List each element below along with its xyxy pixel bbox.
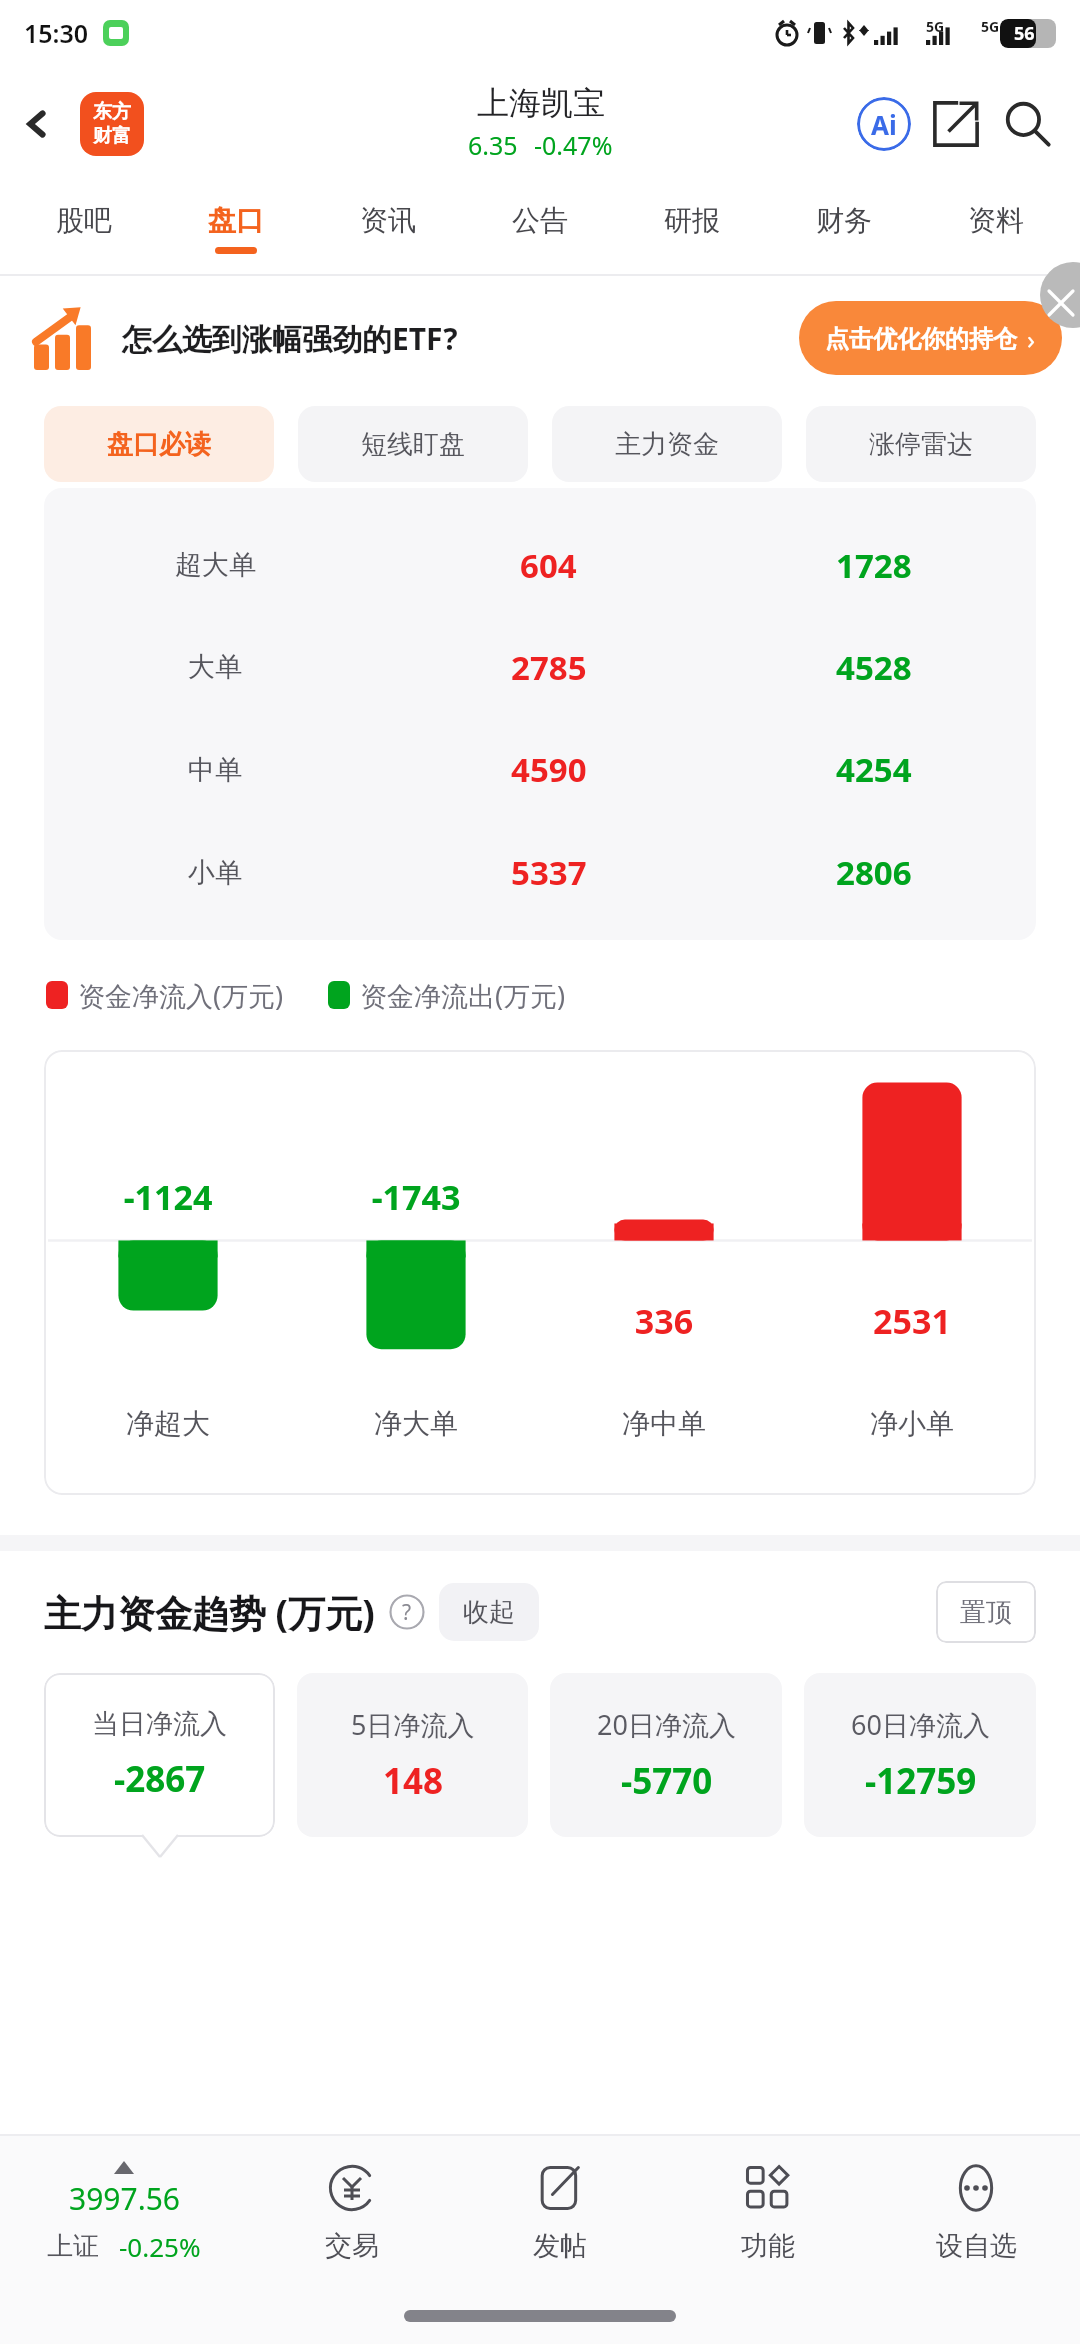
staticText: 盘口 [208, 203, 264, 238]
staticText: 财富 [93, 124, 131, 148]
button[interactable]: East Money home [80, 92, 144, 156]
button[interactable]: 20日净流入 [550, 1673, 782, 1837]
button[interactable]: 股吧 [8, 182, 160, 274]
staticText: 点击优化你的持仓 [825, 324, 1017, 354]
staticText: › [1027, 321, 1036, 356]
staticText: 148 [383, 1757, 444, 1805]
button[interactable]: 涨停雷达 [806, 406, 1036, 482]
button[interactable]: 5日净流入 [297, 1673, 528, 1837]
staticText: 小单 [188, 856, 242, 890]
staticText: 336 [540, 1298, 788, 1344]
staticText: 净大单 [292, 1406, 540, 1441]
staticText: 盘口必读 [107, 428, 211, 461]
staticText: 15:30 [24, 16, 89, 50]
button[interactable]: Share [920, 88, 992, 160]
staticText: 主力资金 [615, 428, 719, 461]
staticText: 资金净流入(万元) [78, 977, 284, 1014]
button[interactable]: 60日净流入 [804, 1673, 1036, 1837]
button[interactable]: 公告 [464, 182, 616, 274]
staticText: 短线盯盘 [361, 428, 465, 461]
staticText: 资金净流出(万元) [360, 977, 566, 1014]
staticText: 2531 [788, 1298, 1036, 1344]
staticText: -0.47% [534, 128, 613, 162]
staticText: 5G [981, 17, 1000, 36]
staticText: 20日净流入 [597, 1706, 736, 1743]
staticText: 6.35 [468, 128, 518, 162]
staticText: 怎么选到涨幅强劲的ETF? [122, 318, 458, 359]
staticText: 收起 [463, 1596, 515, 1629]
staticText: 60日净流入 [851, 1706, 990, 1743]
staticText: 604 [520, 543, 577, 588]
staticText: 研报 [664, 203, 720, 238]
staticText: 净中单 [540, 1406, 788, 1441]
staticText: 中单 [188, 753, 242, 787]
button[interactable]: 研报 [616, 182, 768, 274]
staticText: 股吧 [56, 203, 112, 238]
button[interactable]: Search [992, 88, 1064, 160]
button[interactable]: 资料 [920, 182, 1072, 274]
staticText: 净超大 [44, 1406, 292, 1441]
button[interactable]: 置顶 [960, 1581, 1012, 1643]
staticText: 财务 [816, 203, 872, 238]
staticText: 4590 [511, 747, 587, 792]
staticText: 超大单 [175, 548, 256, 582]
staticText: 置顶 [960, 1596, 1012, 1629]
staticText: 主力资金趋势 (万元) [44, 1587, 375, 1638]
staticText: 资料 [968, 203, 1024, 238]
staticText: -2867 [114, 1755, 206, 1803]
button[interactable]: Back [6, 93, 68, 155]
button[interactable]: 短线盯盘 [298, 406, 528, 482]
staticText: 5337 [511, 850, 587, 895]
staticText: 5G [926, 17, 945, 36]
staticText: 净小单 [788, 1406, 1036, 1441]
button[interactable]: Help [389, 1594, 425, 1630]
button[interactable]: 收起 [463, 1583, 515, 1641]
button[interactable]: 功能 [664, 2136, 872, 2288]
staticText: 交易 [325, 2229, 379, 2263]
button[interactable]: AI assistant [848, 88, 920, 160]
button[interactable]: 资讯 [312, 182, 464, 274]
staticText: 上证 [47, 2230, 99, 2263]
button[interactable]: 3997.56 [0, 2136, 248, 2288]
staticText: 设自选 [936, 2229, 1017, 2263]
staticText: 1728 [836, 543, 912, 588]
button[interactable]: 盘口 [160, 182, 312, 274]
staticText: -12759 [865, 1757, 977, 1805]
staticText: 5日净流入 [351, 1706, 475, 1743]
staticText: -0.25% [119, 2229, 201, 2264]
staticText: 上海凯宝 [477, 83, 605, 123]
staticText: 大单 [188, 650, 242, 684]
staticText: 发帖 [533, 2229, 587, 2263]
staticText: 4254 [836, 747, 912, 792]
button[interactable]: Close ad [1040, 262, 1080, 328]
staticText: 资讯 [360, 203, 416, 238]
button[interactable]: 主力资金 [552, 406, 782, 482]
staticText: ? [402, 1598, 412, 1627]
button[interactable]: 设自选 [872, 2136, 1080, 2288]
staticText: 当日净流入 [92, 1707, 227, 1741]
staticText: -1124 [44, 1174, 292, 1220]
staticText: 2806 [836, 850, 912, 895]
button[interactable]: 财务 [768, 182, 920, 274]
staticText: 涨停雷达 [869, 428, 973, 461]
staticText: 4528 [836, 645, 912, 690]
button[interactable]: 交易 [248, 2136, 456, 2288]
staticText: 2785 [511, 645, 587, 690]
staticText: 东方 [93, 100, 131, 124]
staticText: -5770 [621, 1757, 713, 1805]
staticText: 公告 [512, 203, 568, 238]
button[interactable]: 怎么选到涨幅强劲的ETF? [32, 276, 1062, 400]
staticText: Ai [871, 107, 897, 142]
button[interactable]: 发帖 [456, 2136, 664, 2288]
staticText: 56 [1014, 21, 1035, 46]
staticText: 3997.56 [69, 2178, 180, 2219]
button[interactable]: 盘口必读 [44, 406, 274, 482]
staticText: -1743 [292, 1174, 540, 1220]
staticText: 功能 [741, 2229, 795, 2263]
button[interactable]: 当日净流入 [44, 1673, 275, 1837]
button[interactable]: 点击优化你的持仓 [825, 301, 1036, 375]
